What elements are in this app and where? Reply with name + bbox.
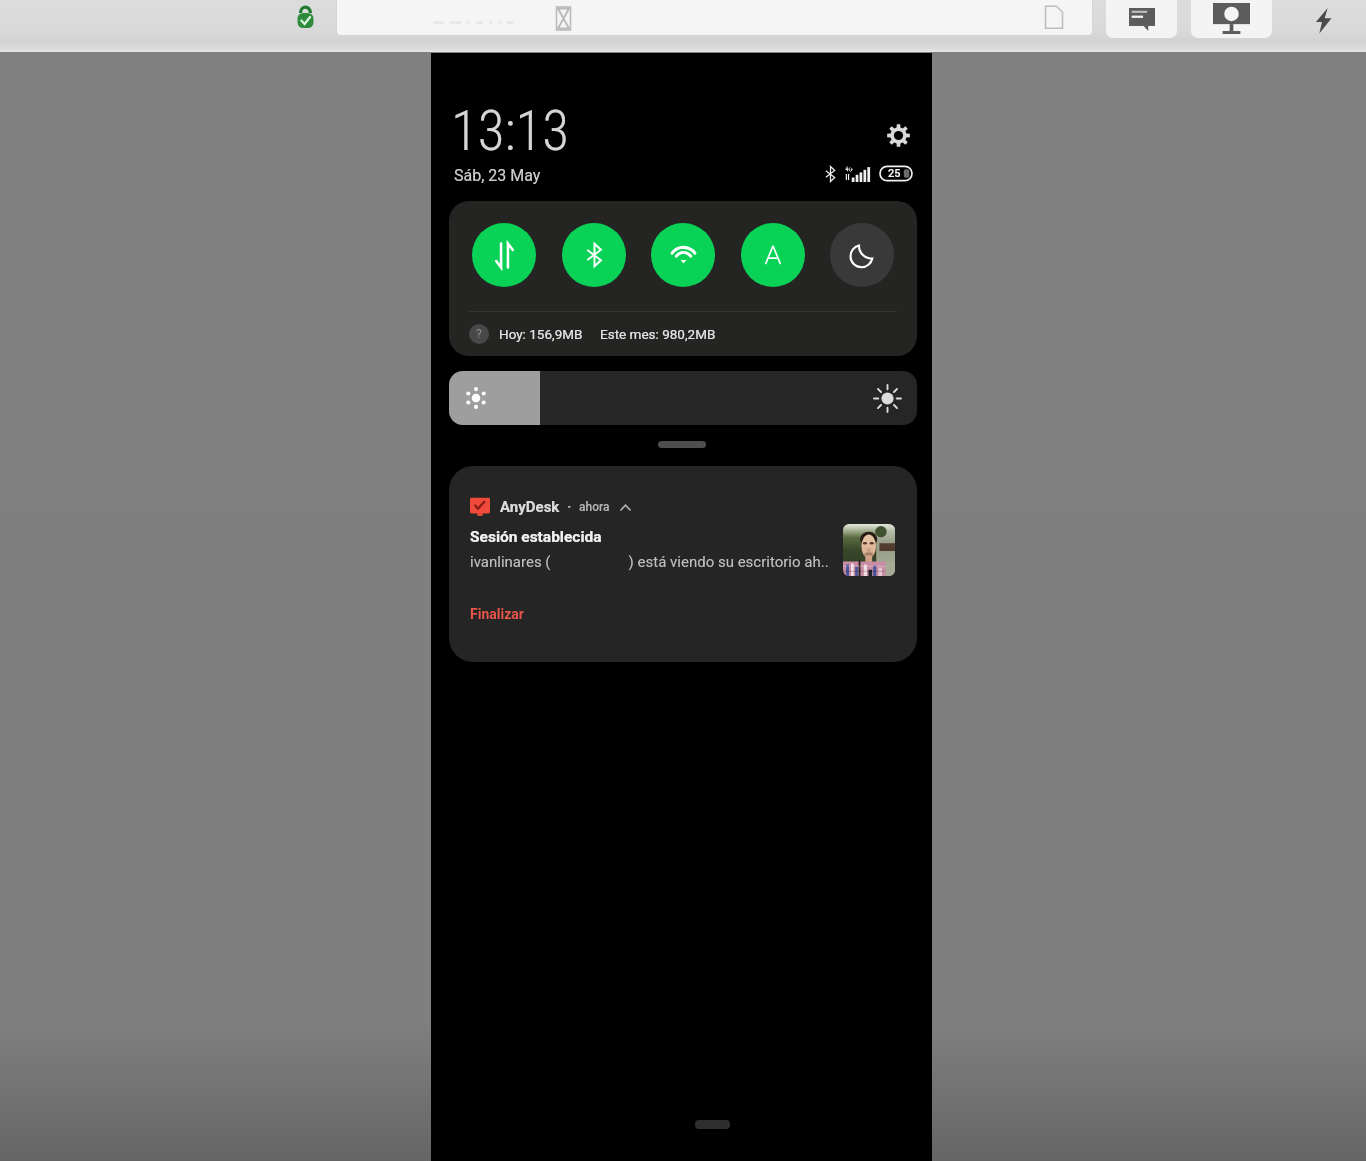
button[interactable]: Actions (1306, 3, 1340, 37)
button[interactable]: ? (449, 319, 917, 349)
staticText: ahora (579, 500, 610, 514)
button[interactable]: Home (661, 1101, 764, 1131)
button[interactable]: Finalizar (463, 602, 531, 626)
button[interactable]: Do not disturb (830, 223, 894, 287)
button[interactable]: Chat (1106, 0, 1177, 38)
staticText: 25 (888, 167, 901, 180)
staticText: 13:13 (451, 99, 570, 163)
button[interactable]: Mobile data (472, 223, 536, 287)
button[interactable]: Bluetooth (562, 223, 626, 287)
button[interactable]: Address bar (336, 0, 1093, 36)
button[interactable]: Auto brightness (741, 223, 805, 287)
staticText: ? (476, 327, 482, 341)
staticText: Este mes: 980,2MB (600, 326, 716, 342)
staticText: Sesión establecida (470, 528, 602, 546)
staticText: Hoy: 156,9MB (499, 326, 583, 342)
staticText: ivanlinares ( ) está viendo su escritori… (470, 553, 829, 571)
staticText: · (567, 498, 572, 516)
staticText: Finalizar (470, 606, 524, 622)
button[interactable]: Expand quick settings (646, 433, 718, 455)
button[interactable]: Share screen (1191, 0, 1272, 38)
button[interactable]: Brightness (449, 371, 917, 425)
button[interactable]: Wi-Fi (651, 223, 715, 287)
staticText: Sáb, 23 May (454, 166, 541, 185)
button[interactable]: Secure connection (291, 3, 319, 31)
button[interactable]: AnyDesk (449, 466, 917, 662)
button[interactable]: Settings (883, 120, 913, 150)
staticText: AnyDesk (500, 498, 560, 516)
